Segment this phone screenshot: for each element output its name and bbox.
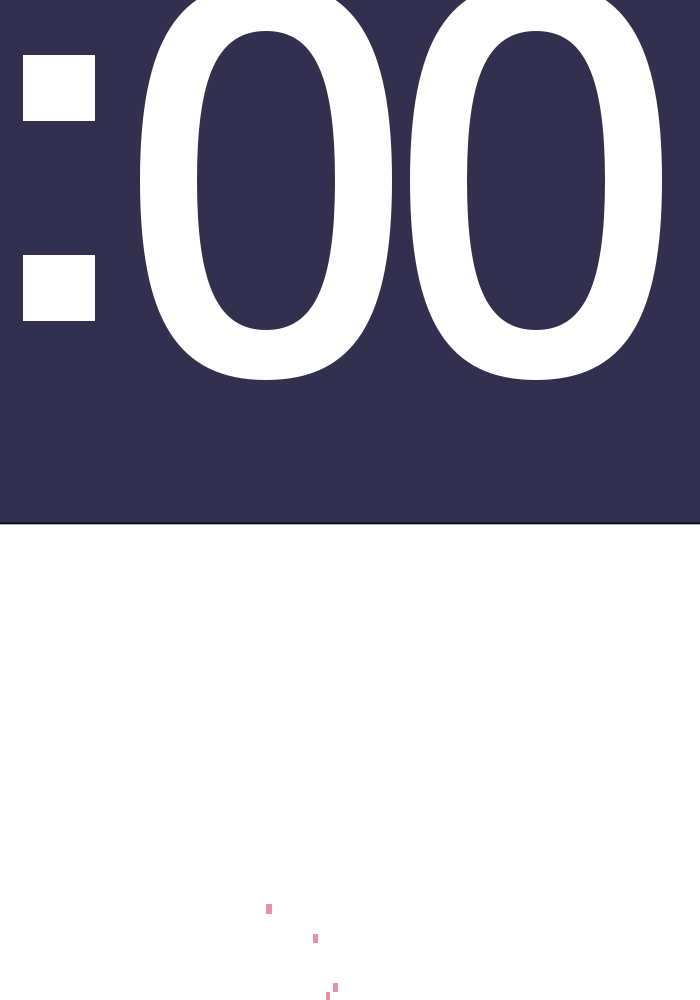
button[interactable]: 00 minutes [0,0,700,1000]
